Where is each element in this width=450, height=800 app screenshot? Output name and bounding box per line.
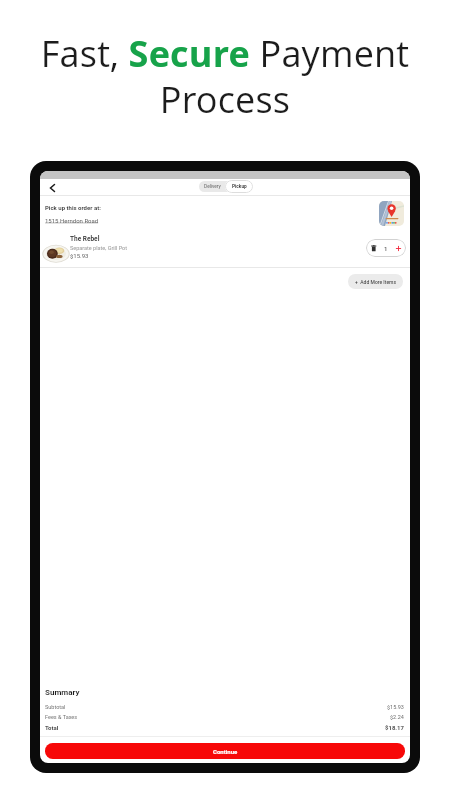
button[interactable] bbox=[379, 201, 404, 226]
button[interactable] bbox=[370, 243, 378, 253]
button[interactable]: 1515 Herndon Road bbox=[45, 217, 99, 224]
staticText: $2.24 bbox=[390, 714, 404, 720]
button[interactable] bbox=[394, 243, 402, 253]
staticText: Pick up this order at: bbox=[45, 204, 101, 211]
staticText: + Add More Items bbox=[355, 279, 397, 285]
staticText: Fast, Secure Payment Process bbox=[0, 29, 450, 123]
staticText: 1 bbox=[384, 245, 388, 252]
staticText: $18.17 bbox=[385, 724, 404, 731]
staticText: Continue bbox=[213, 748, 238, 755]
staticText: $15.93 bbox=[70, 252, 89, 259]
button[interactable]: Pickup bbox=[225, 180, 253, 193]
button[interactable] bbox=[44, 180, 60, 195]
staticText: $15.93 bbox=[387, 704, 404, 710]
staticText: Summary bbox=[45, 688, 80, 697]
staticText: Delivery bbox=[204, 184, 221, 190]
staticText: The Rebel bbox=[70, 235, 100, 243]
staticText: Fees & Taxes bbox=[45, 714, 78, 720]
staticText: Subtotal bbox=[45, 704, 66, 710]
button[interactable]: Continue bbox=[45, 743, 405, 759]
staticText: Total bbox=[45, 724, 59, 731]
staticText: Pickup bbox=[232, 184, 247, 190]
button[interactable]: + Add More Items bbox=[348, 274, 403, 289]
staticText: Separate plate, Grill Pot bbox=[70, 245, 128, 251]
button[interactable]: Delivery bbox=[199, 181, 226, 192]
